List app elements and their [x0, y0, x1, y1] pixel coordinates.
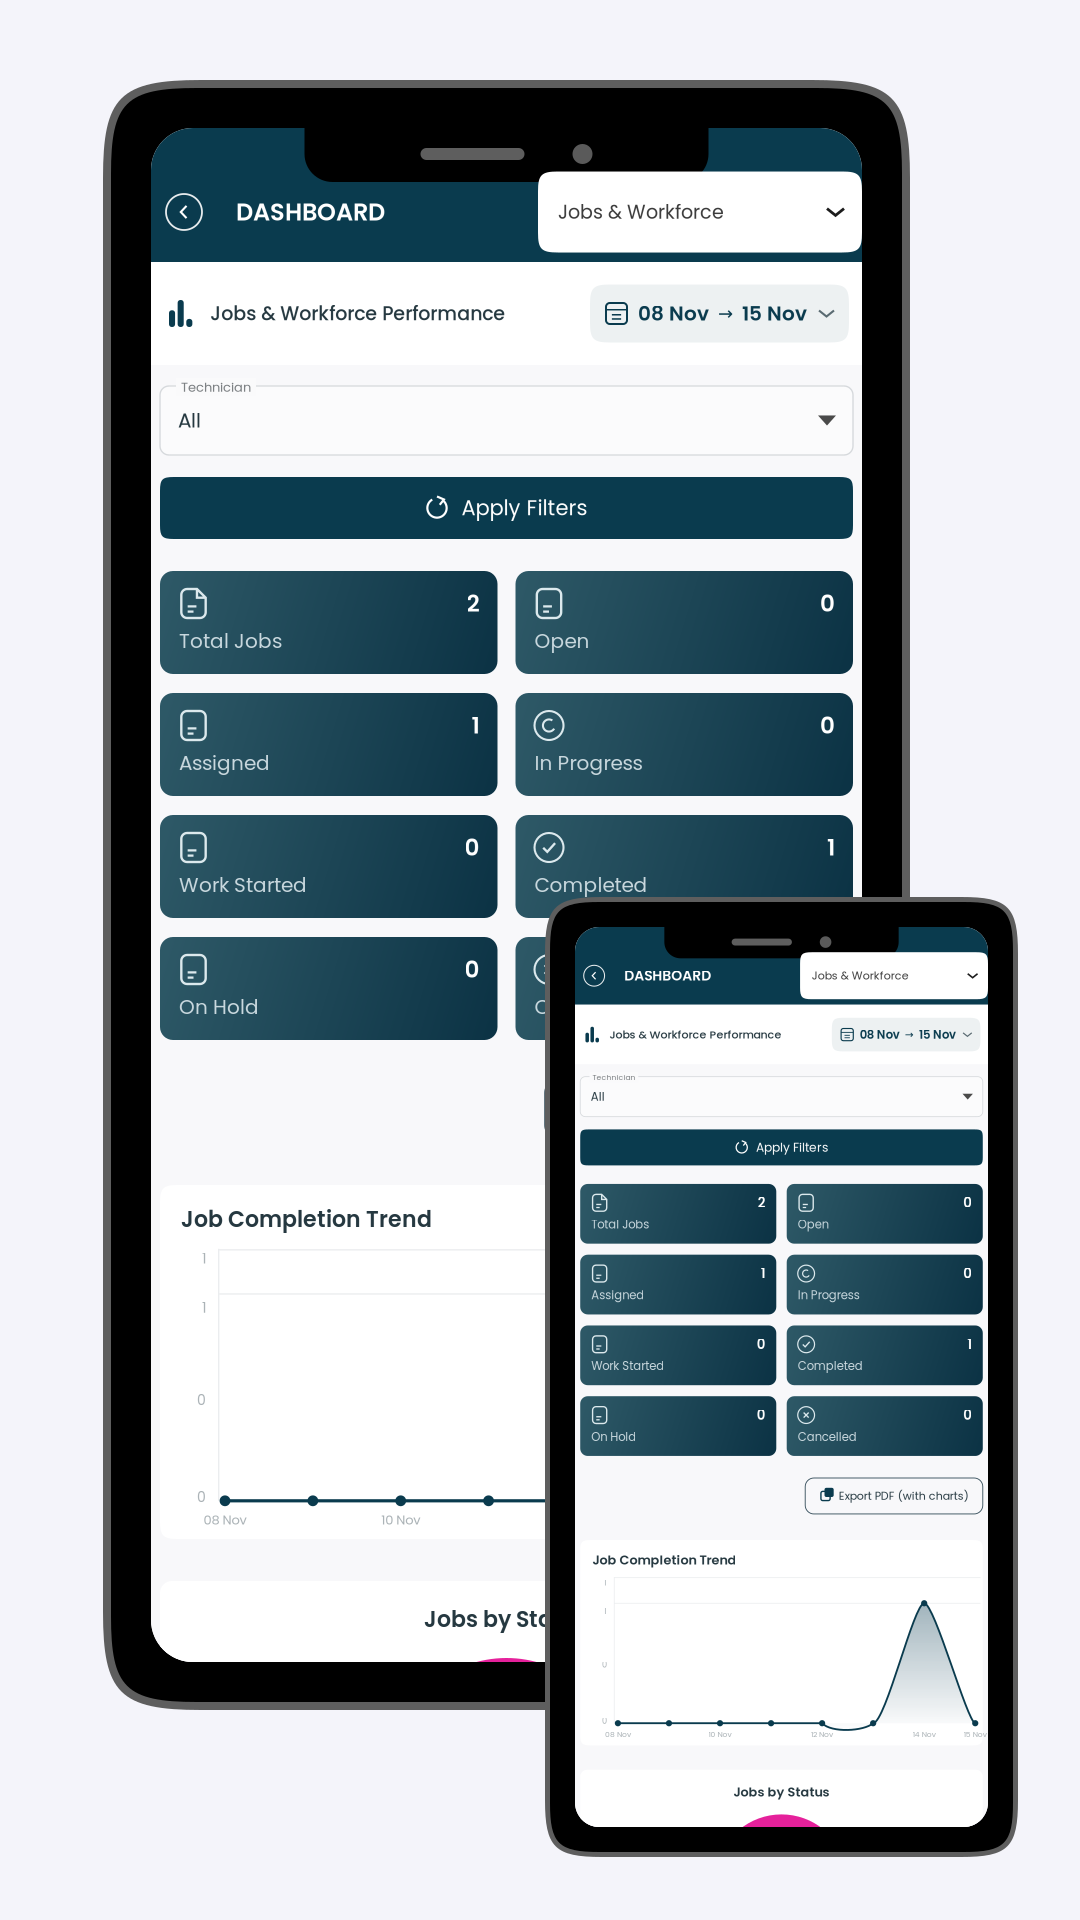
staticText: 0: [963, 1406, 972, 1424]
staticText: 08 Nov: [203, 1511, 246, 1529]
button[interactable]: Export PDF (with charts): [805, 1478, 983, 1514]
staticText: Jobs & Workforce Performance: [210, 300, 505, 327]
staticText: 1: [202, 1298, 206, 1318]
button[interactable]: 0: [580, 1396, 776, 1456]
button[interactable]: 1: [787, 1325, 983, 1385]
staticText: Jobs by Status: [424, 1604, 589, 1635]
staticText: Assigned: [179, 749, 270, 777]
staticText: 1: [604, 1606, 607, 1617]
staticText: Open: [534, 627, 589, 655]
staticText: 14 Nov: [913, 1729, 936, 1740]
staticText: 0: [757, 1406, 766, 1424]
staticText: 0: [820, 587, 835, 620]
staticText: Work Started: [591, 1358, 664, 1374]
staticText: 0: [197, 1487, 206, 1507]
staticText: 15 Nov: [919, 1026, 956, 1043]
staticText: 0: [757, 1335, 766, 1354]
staticText: 1: [471, 709, 479, 742]
staticText: 08 Nov: [638, 299, 709, 327]
button[interactable]: Back: [575, 960, 611, 991]
button[interactable]: 0: [580, 1325, 776, 1385]
staticText: 08 Nov: [860, 1026, 900, 1043]
staticText: 0: [464, 953, 479, 986]
staticText: 1: [604, 1577, 607, 1588]
staticText: →: [718, 303, 733, 324]
staticText: Completed: [798, 1358, 863, 1374]
staticText: On Hold: [591, 1429, 636, 1445]
staticText: DASHBOARD: [236, 195, 385, 229]
button[interactable]: 0: [787, 1396, 983, 1456]
staticText: In Progress: [798, 1287, 860, 1303]
staticText: 2: [758, 1193, 766, 1212]
staticText: Jobs & Workforce Performance: [609, 1027, 781, 1042]
button[interactable]: Jobs & Workforce: [538, 171, 862, 252]
staticText: Job Completion Trend: [592, 1551, 736, 1569]
staticText: →: [905, 1028, 914, 1041]
button[interactable]: 1: [580, 1255, 776, 1314]
staticText: Completed: [534, 871, 647, 899]
staticText: 0: [602, 1715, 607, 1727]
staticText: In Progress: [534, 749, 642, 777]
button[interactable]: 0: [515, 937, 853, 1040]
staticText: 1: [967, 1335, 972, 1354]
staticText: 1: [761, 1264, 766, 1283]
staticText: Jobs & Workforce: [812, 968, 909, 983]
staticText: 10 Nov: [708, 1729, 731, 1740]
staticText: 12 Nov: [557, 1511, 595, 1529]
button[interactable]: 0: [787, 1255, 983, 1314]
button[interactable]: 08 Nov: [590, 284, 849, 342]
button[interactable]: Back: [151, 185, 214, 239]
button[interactable]: 08 Nov: [832, 1018, 980, 1051]
button[interactable]: Apply Filters: [580, 1129, 983, 1165]
button[interactable]: Jobs & Workforce: [800, 952, 988, 999]
staticText: Apply Filters: [756, 1139, 828, 1156]
staticText: All: [591, 1088, 605, 1105]
staticText: Technician: [592, 1072, 635, 1083]
staticText: 0: [963, 1264, 972, 1283]
staticText: Total Jobs: [179, 627, 282, 655]
button[interactable]: 0: [160, 815, 497, 918]
button[interactable]: 2: [580, 1184, 776, 1244]
staticText: DASHBOARD: [624, 966, 711, 985]
button[interactable]: Export PDF (with charts): [545, 1078, 853, 1140]
staticText: Cancelled: [798, 1429, 857, 1445]
staticText: Jobs by Status: [733, 1783, 829, 1801]
staticText: 0: [197, 1390, 206, 1410]
button[interactable]: 1: [515, 815, 853, 918]
staticText: Cancelled: [534, 993, 636, 1021]
staticText: 08 Nov: [605, 1729, 631, 1740]
staticText: 15 Nov: [820, 1511, 859, 1529]
staticText: 0: [820, 953, 835, 986]
staticText: Assigned: [591, 1287, 644, 1303]
staticText: On Hold: [179, 993, 259, 1021]
staticText: Jobs & Workforce: [558, 199, 724, 225]
button[interactable]: 1: [160, 693, 497, 796]
button[interactable]: 0: [160, 937, 497, 1040]
button[interactable]: Apply Filters: [160, 477, 853, 539]
staticText: Export PDF (with charts): [603, 1096, 829, 1122]
staticText: Export PDF (with charts): [839, 1488, 969, 1504]
staticText: 0: [602, 1659, 607, 1670]
staticText: 0: [963, 1193, 972, 1212]
staticText: 1: [827, 831, 835, 864]
staticText: Technician: [181, 378, 251, 396]
staticText: 0: [820, 709, 835, 742]
staticText: 0: [464, 831, 479, 864]
staticText: Work Started: [179, 871, 307, 899]
button[interactable]: 0: [515, 693, 853, 796]
button[interactable]: 0: [787, 1184, 983, 1244]
staticText: 2: [466, 587, 479, 620]
staticText: All: [178, 406, 201, 434]
staticText: Open: [798, 1216, 829, 1233]
staticText: Job Completion Trend: [181, 1204, 432, 1235]
button[interactable]: 2: [160, 571, 497, 674]
staticText: Total Jobs: [591, 1216, 649, 1233]
staticText: Apply Filters: [461, 493, 587, 523]
staticText: 15 Nov: [964, 1729, 987, 1740]
staticText: 1: [202, 1249, 206, 1268]
staticText: 15 Nov: [742, 299, 807, 327]
button[interactable]: 0: [515, 571, 853, 674]
staticText: 10 Nov: [381, 1511, 420, 1529]
staticText: 12 Nov: [811, 1729, 833, 1740]
